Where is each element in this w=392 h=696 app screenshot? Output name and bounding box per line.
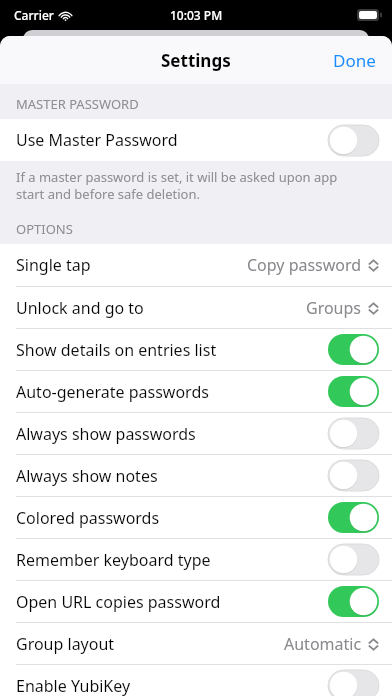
staticText: OPTIONS bbox=[16, 220, 73, 238]
button[interactable]: Done bbox=[317, 39, 392, 82]
staticText: Remember keyboard type bbox=[16, 549, 211, 571]
button[interactable]: Always show notes bbox=[0, 454, 392, 496]
button[interactable]: Show details on entries list bbox=[0, 328, 392, 370]
button[interactable]: Unlock and go to bbox=[0, 286, 392, 328]
button[interactable]: Single tap bbox=[0, 244, 392, 286]
staticText: Settings bbox=[161, 49, 231, 72]
button[interactable]: Use Master Password bbox=[0, 119, 392, 161]
staticText: Always show passwords bbox=[16, 423, 196, 445]
staticText: Unlock and go to bbox=[16, 297, 144, 319]
staticText: Single tap bbox=[16, 254, 91, 276]
button[interactable]: Auto-generate passwords bbox=[0, 370, 392, 412]
staticText: Auto-generate passwords bbox=[16, 381, 209, 403]
staticText: Open URL copies password bbox=[16, 591, 221, 613]
staticText: Use Master Password bbox=[16, 129, 178, 151]
staticText: MASTER PASSWORD bbox=[16, 95, 139, 113]
button[interactable]: Remember keyboard type bbox=[0, 538, 392, 580]
staticText: Always show notes bbox=[16, 465, 158, 487]
staticText: Colored passwords bbox=[16, 507, 160, 529]
staticText: Carrier bbox=[14, 7, 54, 23]
staticText: Enable YubiKey bbox=[16, 675, 131, 696]
button[interactable]: Enable YubiKey bbox=[0, 664, 392, 696]
button[interactable]: Group layout bbox=[0, 622, 392, 664]
button[interactable]: Open URL copies password bbox=[0, 580, 392, 622]
button[interactable]: Always show passwords bbox=[0, 412, 392, 454]
staticText: Groups bbox=[306, 297, 362, 319]
staticText: Done bbox=[333, 49, 376, 72]
button[interactable]: Colored passwords bbox=[0, 496, 392, 538]
staticText: Copy password bbox=[247, 254, 362, 276]
staticText: Show details on entries list bbox=[16, 339, 217, 361]
staticText: 10:03 PM bbox=[170, 7, 223, 23]
staticText: If a master password is set, it will be … bbox=[16, 168, 368, 203]
staticText: Automatic bbox=[284, 633, 362, 655]
staticText: Group layout bbox=[16, 633, 115, 655]
